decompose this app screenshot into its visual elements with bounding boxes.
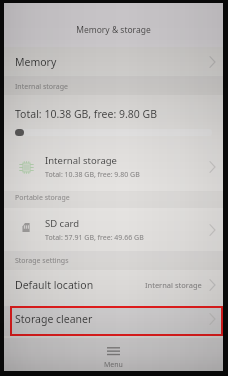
staticText: Storage settings — [15, 256, 69, 266]
staticText: Total: 10.38 GB, free: 9.80 GB — [45, 170, 140, 180]
button[interactable]: Memory — [4, 47, 223, 76]
button[interactable]: Storage cleaner — [4, 306, 223, 336]
staticText: Portable storage — [15, 193, 70, 203]
staticText: Memory — [15, 55, 57, 69]
staticText: Memory & storage — [4, 24, 223, 36]
button[interactable]: Internal storage — [4, 143, 223, 191]
staticText: Default location — [15, 278, 94, 292]
staticText: Internal storage — [45, 154, 117, 167]
staticText: SD card — [45, 217, 80, 230]
staticText: Internal storage — [145, 280, 202, 290]
button[interactable]: Menu — [4, 338, 223, 371]
staticText: Storage cleaner — [15, 312, 93, 326]
staticText: Total: 57.91 GB, free: 49.66 GB — [45, 233, 144, 243]
staticText: Internal storage — [15, 82, 68, 92]
button[interactable]: SD card — [4, 208, 223, 251]
staticText: Menu — [104, 360, 123, 370]
button[interactable]: Default location — [4, 270, 223, 306]
staticText: Total: 10.38 GB, free: 9.80 GB — [15, 107, 158, 121]
